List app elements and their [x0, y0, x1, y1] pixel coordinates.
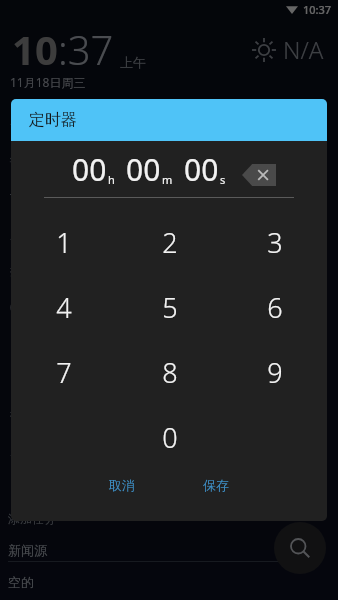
staticText: 11月18日周三 [10, 74, 86, 90]
staticText: h [108, 172, 115, 187]
button[interactable]: Backspace [242, 164, 276, 186]
staticText: 1 [56, 224, 72, 261]
staticText: 新闻源 [8, 542, 47, 558]
staticText: (空) [10, 298, 30, 314]
staticText: 点击 [10, 371, 34, 386]
staticText: 取消 [109, 477, 135, 493]
staticText: 7 [56, 354, 72, 391]
button[interactable]: 6 [222, 275, 327, 340]
staticText: 空的 [8, 574, 34, 590]
button[interactable]: 7 [11, 340, 117, 405]
staticText: 保存 [203, 477, 229, 493]
button[interactable]: 3 [222, 210, 327, 275]
staticText: 定时器 [29, 110, 77, 130]
staticText: 对齐 [10, 227, 34, 242]
button[interactable]: 0 [117, 405, 222, 470]
staticText: 添加任务 [8, 511, 56, 526]
staticText: 6 [267, 289, 283, 326]
button[interactable]: 5 [117, 275, 222, 340]
staticText: 0 [162, 419, 178, 456]
button[interactable]: 取消 [95, 471, 149, 499]
button[interactable]: 1 [11, 210, 117, 275]
staticText: 00 [126, 149, 161, 190]
staticText: 00 [184, 149, 219, 190]
button[interactable]: 保存 [189, 471, 243, 499]
button[interactable]: 4 [11, 275, 117, 340]
staticText: :37 [58, 22, 114, 76]
staticText: 10:37 [303, 2, 332, 17]
staticText: s [220, 172, 226, 187]
staticText: 空的 [10, 443, 34, 458]
staticText: 2 [162, 224, 178, 261]
staticText: 行为 [10, 407, 34, 422]
button[interactable]: Search [274, 522, 326, 574]
staticText: 5 [162, 289, 178, 326]
staticText: m [162, 172, 173, 187]
staticText: T恤 [10, 190, 29, 206]
staticText: 9 [267, 354, 283, 391]
staticText: 上午 [120, 54, 146, 70]
staticText: 按钮 [10, 263, 34, 278]
staticText: 00 [72, 149, 107, 190]
button[interactable]: 9 [222, 340, 327, 405]
button[interactable]: 8 [117, 340, 222, 405]
staticText: 3 [267, 224, 283, 261]
staticText: 8 [162, 354, 178, 391]
staticText: 10 [12, 22, 58, 76]
staticText: 4 [56, 289, 72, 326]
button[interactable]: 2 [117, 210, 222, 275]
staticText: 曲线 [10, 335, 34, 350]
staticText: 语言 [10, 155, 34, 170]
staticText: 管理 [10, 119, 34, 134]
staticText: N/A [283, 33, 324, 66]
